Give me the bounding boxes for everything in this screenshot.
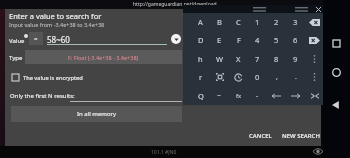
staticText: B [217, 17, 222, 27]
button[interactable]: r [191, 68, 210, 86]
button[interactable]: right [286, 87, 305, 105]
button[interactable]: Back [332, 101, 340, 109]
staticText: 6 [293, 35, 298, 45]
staticText: Q [198, 91, 204, 101]
staticText: http://gameguardian.net/download [133, 1, 217, 8]
staticText: 8 [274, 54, 279, 64]
button[interactable]: X [229, 50, 248, 68]
staticText: 5 [274, 35, 279, 45]
button[interactable]: W [210, 50, 229, 68]
button[interactable]: h [191, 50, 210, 68]
staticText: , [276, 72, 278, 82]
button[interactable]: A [191, 13, 210, 31]
staticText: = [34, 35, 38, 43]
button[interactable]: 1 [248, 13, 267, 31]
button[interactable]: - [248, 87, 267, 105]
button[interactable]: F: Float (-3.4e+38 - 3.4e+38) [25, 50, 182, 64]
button[interactable]: = [29, 32, 43, 45]
button[interactable]: 6 [286, 31, 305, 49]
button[interactable]: Q [191, 87, 210, 105]
staticText: 58~60 [47, 34, 70, 45]
button[interactable]: Recent apps [333, 40, 340, 47]
button[interactable]: 2 [267, 13, 286, 31]
staticText: C [236, 17, 241, 27]
button[interactable]: In all memory [11, 106, 182, 122]
button[interactable]: bs [305, 13, 324, 31]
staticText: F: Float (-3.4e+38 - 3.4e+38) [68, 54, 139, 61]
staticText: 101.1 #JN0 [151, 149, 177, 156]
button[interactable]: ~ [210, 87, 229, 105]
button[interactable]: 3 [286, 13, 305, 31]
staticText: F [237, 35, 241, 45]
button[interactable]: tab [305, 87, 324, 105]
button[interactable]: 5 [267, 31, 286, 49]
staticText: Input value from -3.4e+38 to 3.4e+38 [9, 21, 105, 28]
staticText: D [198, 35, 204, 45]
staticText: W [216, 54, 223, 64]
staticText: 7 [255, 54, 260, 64]
button[interactable]: C [229, 13, 248, 31]
staticText: E [217, 35, 222, 45]
staticText: . [295, 72, 297, 82]
button[interactable]: Expand value options [171, 34, 181, 44]
staticText: 9 [293, 54, 298, 64]
button[interactable]: hist [229, 68, 248, 86]
button[interactable]: NEW SEARCH [279, 129, 323, 143]
button[interactable]: 0 [248, 68, 267, 86]
button[interactable]: 4 [248, 31, 267, 49]
staticText: CANCEL [249, 132, 272, 140]
staticText: 0 [255, 72, 260, 82]
button[interactable]: dots [305, 50, 324, 68]
button[interactable]: 8 [267, 50, 286, 68]
button[interactable]: 9 [286, 50, 305, 68]
button[interactable]: Close keyboard [315, 6, 322, 13]
staticText: 2 [274, 17, 279, 27]
button[interactable]: The value is encrypted [12, 72, 83, 83]
staticText: In all memory [77, 110, 117, 118]
staticText: A [198, 17, 203, 27]
staticText: X [236, 54, 241, 64]
button[interactable]: del [305, 31, 324, 49]
button[interactable]: Home [332, 68, 341, 77]
staticText: h [198, 54, 203, 64]
staticText: 1 [255, 17, 260, 27]
staticText: 4 [255, 35, 260, 45]
button[interactable]: left [267, 87, 286, 105]
button[interactable]: D [191, 31, 210, 49]
staticText: r [199, 72, 203, 82]
button[interactable]: . [286, 68, 305, 86]
staticText: NEW SEARCH [282, 132, 320, 140]
staticText: Only the first N results: [10, 92, 75, 100]
button[interactable]: fx [229, 87, 248, 105]
staticText: ~ [217, 91, 222, 101]
button[interactable]: E [210, 31, 229, 49]
button[interactable]: CANCEL [246, 129, 275, 143]
staticText: - [256, 91, 259, 101]
staticText: The value is encrypted [23, 74, 83, 82]
other: Watermark [313, 148, 323, 155]
staticText: Enter a value to search for [9, 11, 102, 21]
button[interactable]: dots [305, 68, 324, 86]
staticText: Type [9, 54, 23, 62]
button[interactable]: 7 [248, 50, 267, 68]
button[interactable]: B [210, 13, 229, 31]
button[interactable]: F [229, 31, 248, 49]
staticText: Value [9, 37, 25, 45]
staticText: 3 [293, 17, 298, 27]
staticText: fx [236, 92, 242, 100]
button[interactable]: grid [210, 68, 229, 86]
button[interactable]: , [267, 68, 286, 86]
